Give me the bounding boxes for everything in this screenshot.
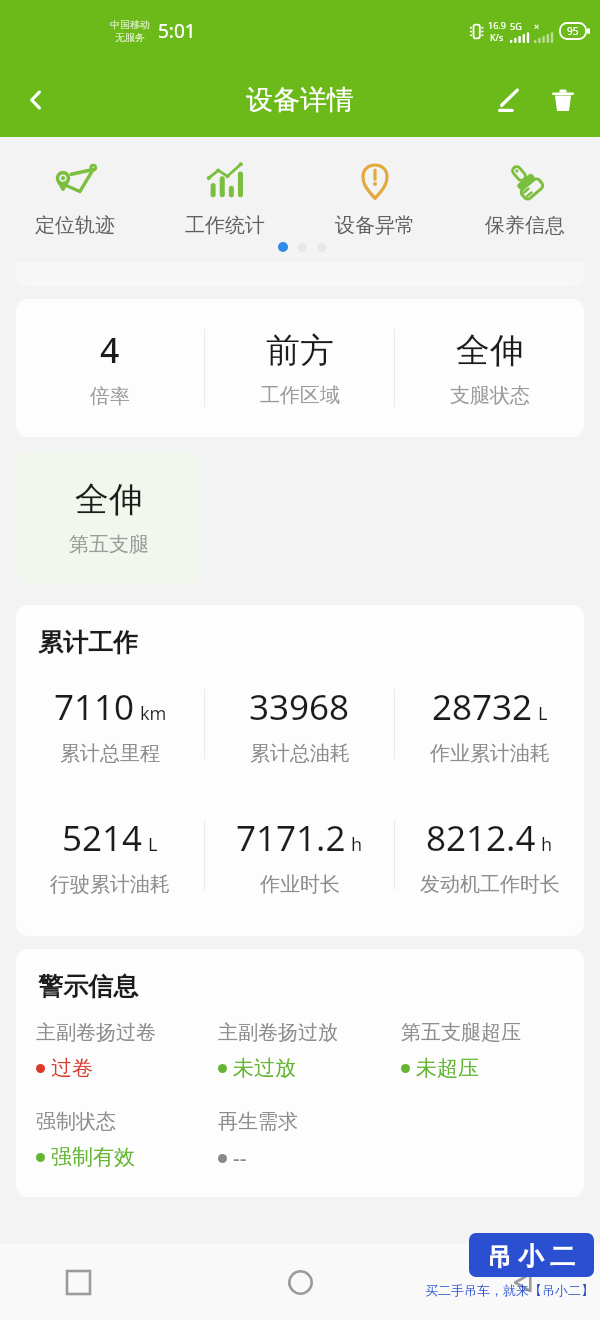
button[interactable]: Back (12, 76, 60, 124)
staticText: 定位轨迹 (35, 213, 115, 238)
staticText: 累计总油耗 (250, 741, 350, 766)
staticText: 28732 (432, 683, 533, 731)
staticText: 全伸 (75, 478, 143, 521)
staticText: 支腿状态 (450, 383, 530, 408)
staticText: × (534, 20, 540, 32)
staticText: 工作统计 (185, 213, 265, 238)
staticText: 7110 (54, 683, 135, 731)
button[interactable]: Edit (486, 77, 532, 123)
button[interactable]: 警示信息 (16, 949, 584, 1197)
staticText: 再生需求 (218, 1109, 298, 1134)
staticText: 强制状态 (36, 1109, 116, 1134)
button[interactable]: Back (496, 1256, 548, 1308)
staticText: 5214 (62, 814, 143, 862)
staticText: 设备异常 (335, 213, 415, 238)
staticText: 倍率 (90, 384, 130, 409)
staticText: 8212.4 (426, 814, 536, 862)
staticText: 全伸 (456, 329, 524, 372)
staticText: 中国移动 (110, 18, 150, 31)
staticText: 前方 (266, 329, 334, 372)
button[interactable]: Delete (540, 77, 586, 123)
button[interactable]: 工作统计 (150, 153, 300, 242)
button[interactable]: 定位轨迹 (0, 153, 150, 242)
staticText: 工作区域 (260, 383, 340, 408)
staticText: K/s (490, 31, 504, 43)
staticText: L (148, 832, 158, 857)
staticText: -- (233, 1144, 247, 1173)
staticText: 吊 小 二 (487, 1238, 576, 1272)
staticText: h (351, 832, 363, 857)
staticText: 5G (510, 20, 522, 32)
staticText: km (140, 701, 167, 726)
staticText: 无服务 (115, 31, 145, 44)
button[interactable]: 保养信息 (450, 153, 600, 242)
staticText: 5:01 (158, 18, 196, 44)
staticText: 发动机工作时长 (420, 872, 560, 897)
staticText: L (538, 701, 548, 726)
button[interactable]: Recents (52, 1256, 104, 1308)
button[interactable]: 全伸 (16, 451, 201, 583)
staticText: 33968 (249, 683, 350, 731)
staticText: 未超压 (416, 1055, 479, 1081)
staticText: 行驶累计油耗 (50, 872, 170, 897)
staticText: 4 (100, 327, 120, 373)
button[interactable]: 累计工作 (16, 605, 584, 936)
staticText: 95 (567, 24, 579, 38)
button[interactable]: 4 (16, 299, 584, 437)
staticText: 作业累计油耗 (430, 741, 550, 766)
staticText: 主副卷扬过放 (218, 1020, 338, 1045)
staticText: 警示信息 (38, 971, 138, 1002)
staticText: 第五支腿超压 (401, 1020, 521, 1045)
staticText: 16.9 (488, 19, 506, 31)
staticText: 保养信息 (485, 213, 565, 238)
staticText: 累计总里程 (60, 741, 160, 766)
staticText: 作业时长 (260, 872, 340, 897)
button[interactable]: 设备异常 (300, 153, 450, 242)
staticText: 买二手吊车，就来【吊小二】 (425, 1282, 594, 1298)
staticText: 主副卷扬过卷 (36, 1020, 156, 1045)
staticText: h (541, 832, 553, 857)
staticText: 设备详情 (246, 83, 354, 117)
staticText: 7171.2 (236, 814, 346, 862)
staticText: 强制有效 (51, 1144, 135, 1170)
button[interactable]: Home (274, 1256, 326, 1308)
staticText: 未过放 (233, 1055, 296, 1081)
staticText: 第五支腿 (69, 532, 149, 557)
staticText: 累计工作 (38, 627, 138, 658)
staticText: 过卷 (51, 1055, 93, 1081)
